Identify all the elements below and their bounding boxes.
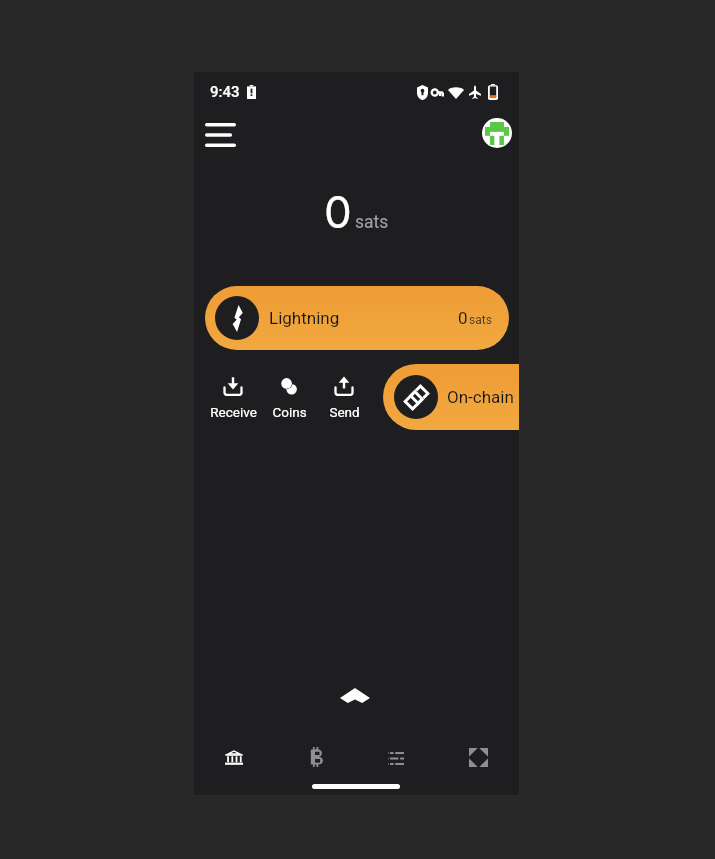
button[interactable]: Bitcoin price <box>282 733 350 781</box>
button[interactable]: Coins <box>261 372 317 420</box>
button[interactable]: Send <box>316 372 372 420</box>
button[interactable]: Receive <box>205 372 261 420</box>
staticText: Receive <box>210 404 257 420</box>
button[interactable]: Expand <box>336 680 374 710</box>
button[interactable]: Home <box>200 733 268 781</box>
staticText: Coins <box>272 404 307 420</box>
staticText: sats <box>469 313 492 327</box>
button[interactable]: Lightning <box>205 286 509 350</box>
staticText: Send <box>329 404 360 420</box>
button[interactable]: Transactions <box>362 733 430 781</box>
staticText: sats <box>355 212 389 233</box>
button[interactable]: Scan QR code <box>444 733 512 781</box>
staticText: On-chain <box>447 387 514 407</box>
button[interactable]: Menu <box>197 112 243 158</box>
staticText: Lightning <box>269 308 340 328</box>
staticText: 0 <box>458 308 468 328</box>
button[interactable]: Profile <box>482 118 512 148</box>
staticText: 0 <box>324 185 352 238</box>
button[interactable]: On-chain <box>383 364 519 430</box>
staticText: 9:43 <box>210 83 240 101</box>
